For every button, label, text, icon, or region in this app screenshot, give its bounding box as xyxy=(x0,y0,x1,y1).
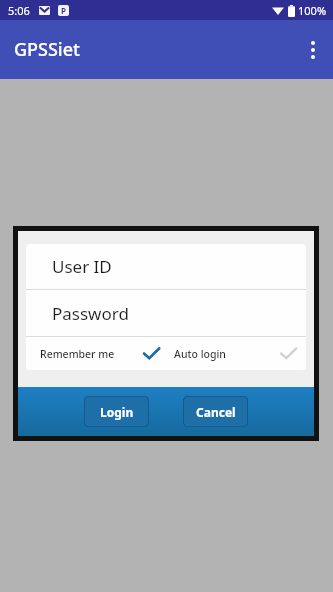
button[interactable]: Auto login xyxy=(166,337,306,370)
button[interactable]: Password xyxy=(26,290,306,336)
staticText: P xyxy=(61,5,66,16)
staticText: Password xyxy=(52,302,129,325)
staticText: Cancel xyxy=(196,404,236,420)
button[interactable]: Login xyxy=(84,396,149,427)
staticText: Remember me xyxy=(40,347,115,361)
staticText: Login xyxy=(100,404,134,420)
staticText: 100% xyxy=(298,3,327,18)
staticText: 5:06 xyxy=(8,3,30,18)
button[interactable]: More options xyxy=(293,30,333,70)
staticText: Auto login xyxy=(174,347,226,361)
button[interactable]: User ID xyxy=(26,244,306,289)
staticText: User ID xyxy=(52,255,112,278)
button[interactable]: Remember me xyxy=(26,337,166,370)
button[interactable]: Cancel xyxy=(183,396,248,427)
staticText: GPSSiet xyxy=(14,37,80,62)
